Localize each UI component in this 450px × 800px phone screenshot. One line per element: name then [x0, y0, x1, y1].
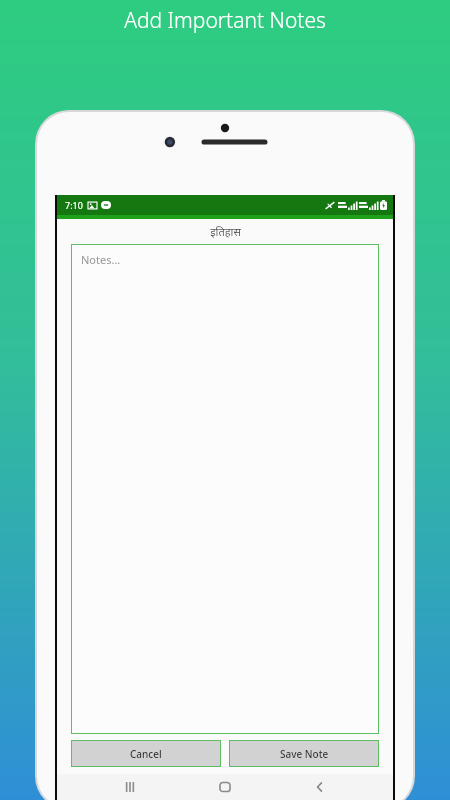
button[interactable]: Recent apps — [108, 774, 152, 800]
staticText: Notes... — [81, 252, 121, 267]
button[interactable]: Cancel — [71, 740, 221, 767]
button[interactable]: Home — [203, 774, 247, 800]
staticText: Cancel — [130, 747, 162, 761]
staticText: Save Note — [280, 747, 329, 761]
button[interactable]: Notes... — [71, 244, 379, 734]
button[interactable]: Back — [298, 774, 342, 800]
staticText: Add Important Notes — [124, 6, 326, 35]
button[interactable]: Save Note — [229, 740, 379, 767]
staticText: इतिहास — [210, 224, 241, 239]
staticText: 7:10 — [65, 199, 83, 211]
